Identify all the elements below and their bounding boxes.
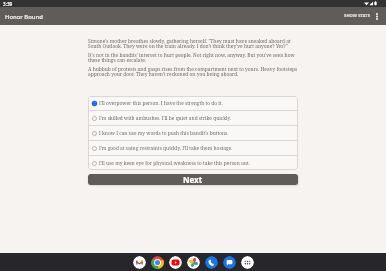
button[interactable]: More options (371, 8, 386, 24)
button[interactable]: All apps (241, 256, 254, 269)
staticText: A hubbub of protests and gasps rises fro… (88, 66, 298, 78)
button[interactable]: SHOW STATS (340, 8, 371, 24)
staticText: SHOW STATS (344, 13, 371, 19)
staticText: Next (183, 174, 203, 185)
button[interactable]: Chrome (151, 256, 164, 269)
button[interactable]: I'll overpower this person. I have the s… (88, 96, 298, 110)
button[interactable]: I know I can use my words to push this b… (88, 126, 298, 140)
button[interactable]: YouTube (169, 256, 182, 269)
button[interactable]: Phone (205, 256, 218, 269)
button[interactable]: I'm good at using restraints quickly. I'… (88, 141, 298, 155)
staticText: I know I can use my words to push this b… (99, 130, 229, 137)
staticText: Honor Bound (5, 13, 43, 21)
button[interactable]: I'm skilled with ambushes. I'll be quiet… (88, 111, 298, 125)
staticText: I'm skilled with ambushes. I'll be quiet… (99, 115, 232, 122)
staticText: Simone's mother breathes slowly, gatheri… (88, 38, 298, 50)
staticText: It's not in the bandits' interest to hur… (88, 52, 298, 64)
button[interactable]: Photos (187, 256, 200, 269)
staticText: I'm good at using restraints quickly. I'… (99, 145, 233, 152)
button[interactable]: I'll use my keen eye for physical weakne… (88, 156, 298, 170)
button[interactable]: Gmail (133, 256, 146, 269)
staticText: 3:39 (3, 1, 13, 7)
button[interactable]: Messages (223, 256, 236, 269)
button[interactable]: Next (88, 174, 298, 185)
staticText: I'll use my keen eye for physical weakne… (99, 160, 250, 167)
staticText: I'll overpower this person. I have the s… (99, 100, 223, 107)
